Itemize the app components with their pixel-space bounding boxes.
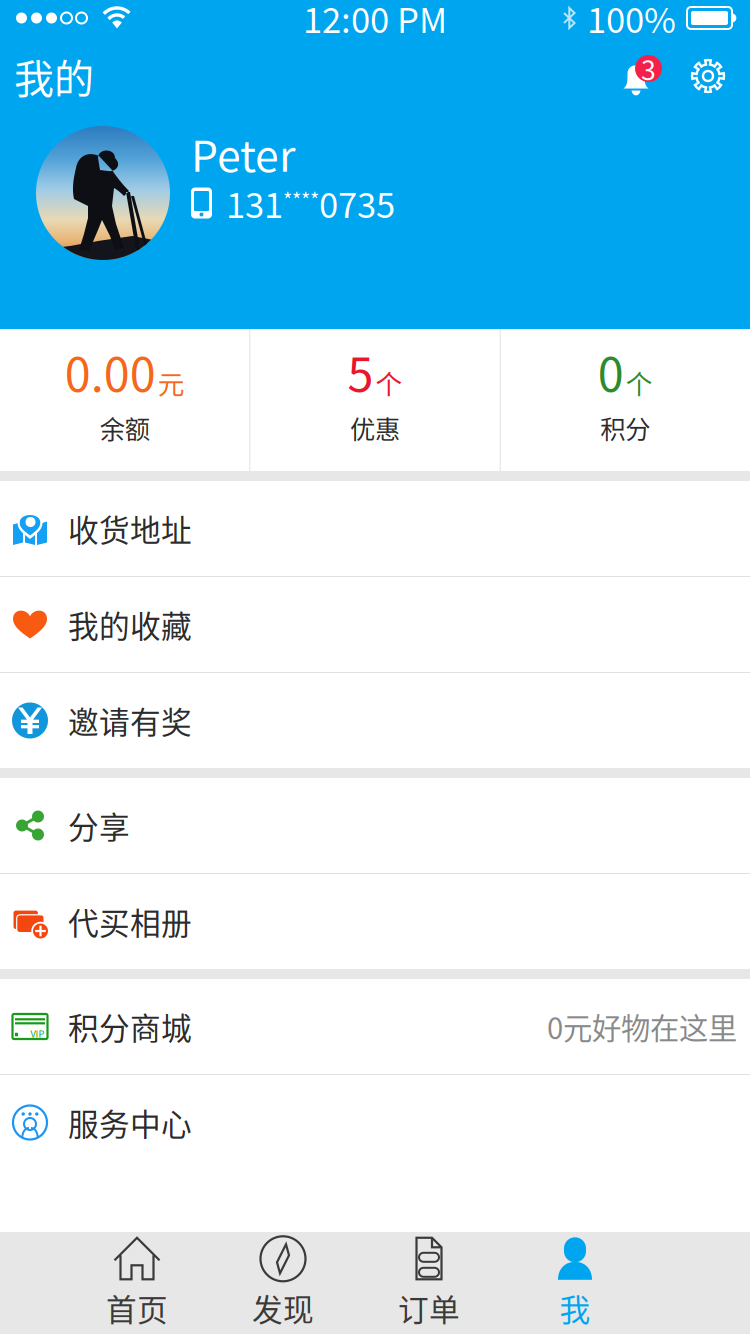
staticText: 收货地址: [68, 506, 192, 551]
button[interactable]: 5: [250, 329, 500, 471]
button[interactable]: 首页: [64, 1232, 210, 1334]
staticText: 5: [347, 337, 373, 405]
staticText: 分享: [68, 803, 130, 848]
staticText: 100%: [587, 0, 676, 43]
button[interactable]: Notifications: [608, 48, 664, 104]
staticText: 我: [559, 1286, 590, 1330]
button[interactable]: 我: [502, 1232, 648, 1334]
staticText: 131: [226, 178, 283, 228]
staticText: 优惠: [350, 409, 400, 446]
button[interactable]: Settings: [680, 48, 736, 104]
staticText: 0元好物在这里: [547, 1005, 737, 1048]
staticText: 邀请有奖: [68, 698, 192, 743]
staticText: VIP: [30, 1027, 44, 1040]
staticText: 服务中心: [68, 1100, 192, 1145]
button[interactable]: 0: [501, 329, 750, 471]
staticText: Peter: [191, 122, 296, 184]
staticText: 首页: [106, 1286, 168, 1330]
staticText: 余额: [100, 409, 150, 446]
staticText: 订单: [398, 1286, 460, 1330]
button[interactable]: 代买相册: [0, 874, 750, 969]
button[interactable]: 服务中心: [0, 1075, 750, 1170]
staticText: 积分: [600, 409, 650, 446]
staticText: 积分商城: [68, 1004, 192, 1049]
button[interactable]: 分享: [0, 778, 750, 874]
button[interactable]: 收货地址: [0, 481, 750, 577]
staticText: 元: [158, 363, 185, 402]
button[interactable]: 我的收藏: [0, 577, 750, 673]
staticText: 我的: [14, 47, 94, 105]
button[interactable]: 发现: [210, 1232, 356, 1334]
staticText: 我的收藏: [68, 602, 192, 647]
button[interactable]: VIP: [0, 979, 750, 1075]
staticText: 个: [375, 363, 402, 402]
staticText: 代买相册: [68, 899, 192, 944]
button[interactable]: 0.00: [0, 329, 249, 471]
staticText: 个: [626, 363, 653, 402]
staticText: 0735: [319, 178, 395, 228]
button[interactable]: 订单: [356, 1232, 502, 1334]
staticText: 3: [641, 49, 656, 88]
staticText: 12:00 PM: [303, 0, 447, 43]
staticText: 0.00: [65, 337, 156, 405]
staticText: 0: [598, 337, 624, 405]
button[interactable]: 邀请有奖: [0, 673, 750, 768]
staticText: ****: [283, 184, 319, 213]
staticText: 发现: [252, 1286, 314, 1330]
